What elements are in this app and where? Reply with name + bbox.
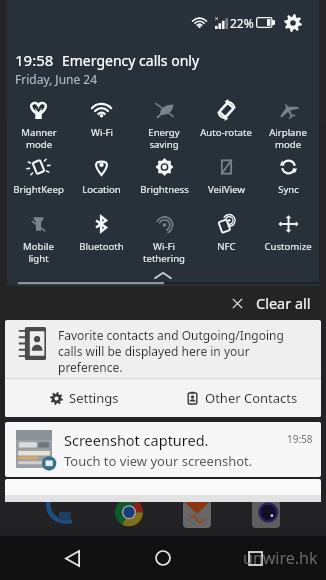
staticText: Auto-rotate — [200, 126, 252, 139]
staticText: Wi-Fi — [91, 126, 113, 139]
button[interactable]: Auto-rotate — [195, 100, 257, 157]
button[interactable]: Location — [70, 157, 133, 214]
button[interactable]: Manner mode — [7, 100, 70, 157]
button[interactable]: Energy saving — [133, 100, 195, 157]
staticText: Energy saving — [148, 126, 180, 151]
button[interactable]: Home — [143, 538, 183, 578]
button[interactable]: Bluetooth — [70, 214, 133, 271]
button[interactable]: Airplane mode — [257, 100, 319, 157]
button[interactable]: Sync — [257, 157, 319, 214]
staticText: Brightness — [140, 183, 189, 196]
staticText: Favorite contacts and Outgoing/Ingoing c… — [58, 327, 309, 375]
button[interactable]: Brightness — [133, 157, 195, 214]
staticText: 22% — [230, 15, 254, 31]
button[interactable]: Wi-Fi — [70, 100, 133, 157]
staticText: Touch to view your screenshot. — [64, 452, 253, 470]
staticText: Emergency calls only — [62, 51, 200, 70]
button[interactable]: Mobile light — [7, 214, 70, 271]
staticText: Settings — [69, 389, 119, 407]
staticText: Mobile light — [23, 240, 54, 265]
staticText: Airplane mode — [269, 126, 307, 151]
staticText: Other Contacts — [205, 389, 298, 407]
button[interactable]: Favorite contacts and Outgoing/Ingoing c… — [5, 320, 321, 417]
staticText: Sync — [278, 183, 299, 196]
button[interactable]: VeilView — [195, 157, 257, 214]
button[interactable]: Settings — [5, 379, 163, 417]
button[interactable]: Screenshot captured. — [5, 422, 321, 477]
button[interactable]: Clear all — [232, 293, 326, 313]
button[interactable]: Back — [52, 538, 92, 578]
staticText: NFC — [217, 240, 236, 253]
staticText: VeilView — [208, 183, 245, 196]
button[interactable]: BrightKeep — [7, 157, 70, 214]
staticText: Bluetooth — [79, 240, 124, 253]
staticText: Wi-Fi tethering — [143, 240, 185, 265]
button[interactable]: Other Contacts — [163, 379, 321, 417]
button[interactable]: Recents — [235, 538, 275, 578]
staticText: 19:58 — [15, 50, 54, 70]
button[interactable]: Customize — [257, 214, 319, 271]
button[interactable]: Wi-Fi tethering — [133, 214, 195, 271]
staticText: BrightKeep — [13, 183, 64, 196]
staticText: Screenshot captured. — [64, 430, 209, 450]
button[interactable]: Settings — [283, 13, 302, 32]
staticText: Location — [82, 183, 121, 196]
staticText: Clear all — [256, 293, 311, 313]
staticText: Friday, June 24 — [15, 71, 98, 87]
button[interactable]: NFC — [195, 214, 257, 271]
staticText: unwire.hk — [243, 547, 318, 569]
staticText: Manner mode — [21, 126, 57, 151]
staticText: 19:58 — [287, 432, 313, 446]
staticText: Customize — [264, 240, 312, 253]
